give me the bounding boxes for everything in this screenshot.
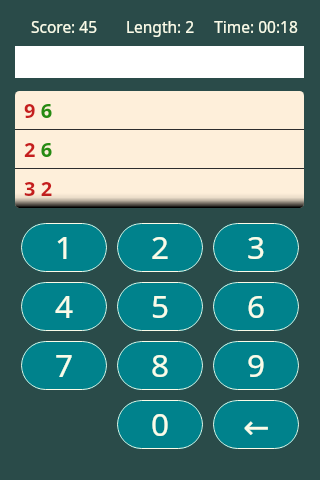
button[interactable]: 5	[117, 282, 203, 331]
staticText: 9	[247, 343, 266, 386]
staticText: 4	[55, 284, 74, 327]
staticText: 8	[151, 343, 170, 386]
staticText: 1	[55, 225, 74, 268]
button[interactable]: 0	[117, 400, 203, 449]
button[interactable]: 7	[21, 341, 107, 390]
button[interactable]: 8	[117, 341, 203, 390]
button[interactable]: Backspace	[213, 400, 299, 449]
button[interactable]: 9	[213, 341, 299, 390]
button[interactable]: 4	[21, 282, 107, 331]
button[interactable]: 2	[117, 223, 203, 272]
staticText: 2 6	[24, 136, 53, 163]
staticText: Length: 2	[112, 16, 208, 37]
staticText: 7	[55, 343, 74, 386]
staticText: 5	[151, 284, 170, 327]
staticText: ←	[243, 409, 270, 446]
button[interactable]: 6	[213, 282, 299, 331]
staticText: 3 2	[24, 175, 53, 202]
button[interactable]: 9 6	[15, 91, 304, 129]
staticText: 6	[247, 284, 266, 327]
staticText: 2	[151, 225, 170, 268]
staticText: Time: 00:18	[208, 16, 304, 37]
button[interactable]: 3	[213, 223, 299, 272]
staticText: 3	[247, 225, 266, 268]
staticText: 0	[151, 402, 170, 445]
staticText: Score: 45	[16, 16, 112, 37]
button[interactable]: 2 6	[15, 130, 304, 168]
button[interactable]: 1	[21, 223, 107, 272]
button[interactable]: 3 2	[15, 169, 304, 207]
staticText: 9 6	[24, 97, 53, 124]
